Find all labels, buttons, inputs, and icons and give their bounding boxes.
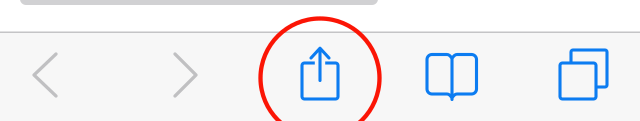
- button[interactable]: Bookmarks: [396, 33, 508, 121]
- button[interactable]: Tabs: [527, 33, 639, 121]
- button[interactable]: Back: [0, 33, 110, 121]
- button[interactable]: Share: [262, 33, 378, 121]
- button[interactable]: Forward: [141, 33, 251, 121]
